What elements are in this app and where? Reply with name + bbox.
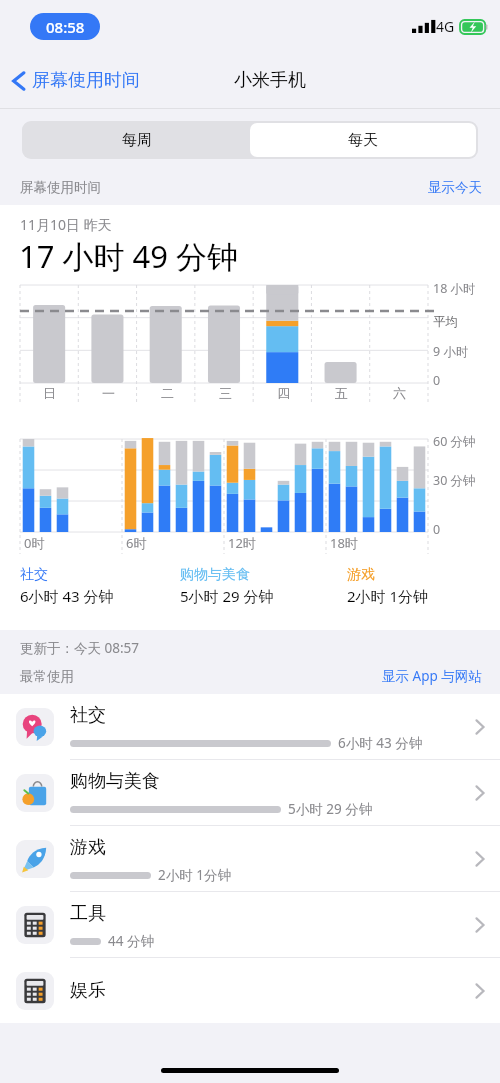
button[interactable]: 购物与美食 [0,760,500,825]
staticText: 三 [219,385,232,401]
staticText: 屏幕使用时间 [32,69,140,92]
staticText: 18 小时 [433,280,476,297]
staticText: 显示今天 [428,179,482,196]
staticText: 6时 [126,534,147,552]
staticText: 4G [436,17,455,36]
staticText: 11月10日 昨天 [20,215,112,234]
staticText: 18时 [330,534,358,552]
staticText: 6小时 43 分钟 [20,586,114,606]
staticText: 2小时 1分钟 [158,866,231,884]
staticText: 购物与美食 [70,770,160,793]
staticText: 44 分钟 [108,932,154,950]
staticText: 娱乐 [70,979,106,1002]
button[interactable]: 游戏 [0,826,500,891]
button[interactable]: 屏幕使用时间 [12,69,140,92]
staticText: 六 [393,385,406,401]
button[interactable]: 每天 [250,123,476,157]
staticText: 显示 App 与网站 [382,667,482,685]
staticText: 60 分钟 [433,433,476,450]
staticText: 9 小时 [433,343,469,360]
staticText: 5小时 29 分钟 [288,800,373,818]
staticText: 二 [161,385,174,401]
button[interactable]: 显示 App 与网站 [382,667,482,685]
staticText: 6小时 43 分钟 [338,734,423,752]
staticText: 购物与美食 [180,566,250,584]
staticText: 屏幕使用时间 [20,179,101,196]
button[interactable]: 工具 [0,892,500,957]
button[interactable]: 社交 [0,694,500,759]
staticText: 社交 [20,566,48,584]
staticText: 12时 [228,534,256,552]
button[interactable]: 每周 [24,123,250,157]
staticText: 五 [335,385,348,401]
staticText: 更新于：今天 08:57 [20,639,140,657]
staticText: 0时 [24,534,45,552]
staticText: 5小时 29 分钟 [180,586,274,606]
staticText: 游戏 [70,836,106,859]
button[interactable]: 显示今天 [428,179,482,196]
staticText: 社交 [70,704,106,727]
staticText: 17 小时 49 分钟 [19,235,239,277]
staticText: 最常使用 [20,668,74,685]
staticText: 一 [102,385,115,401]
button[interactable]: 娱乐 [0,958,500,1023]
staticText: 日 [43,385,56,401]
staticText: 30 分钟 [433,472,476,489]
staticText: 平均 [433,314,458,330]
staticText: 每周 [122,131,152,150]
staticText: 小米手机 [234,69,306,92]
staticText: 四 [277,385,290,401]
staticText: 游戏 [347,566,375,584]
staticText: 工具 [70,902,106,925]
staticText: 0 [433,372,441,389]
staticText: 2小时 1分钟 [347,586,429,606]
staticText: 每天 [348,131,378,150]
staticText: 08:58 [46,17,85,37]
staticText: 0 [433,521,441,538]
